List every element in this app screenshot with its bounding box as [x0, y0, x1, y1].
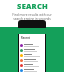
button[interactable]: [19, 58, 45, 63]
button[interactable]: [19, 53, 45, 58]
staticText: SEARCH: [17, 1, 48, 11]
button[interactable]: [19, 43, 45, 48]
staticText: Find more results with our search engine…: [12, 13, 52, 21]
button[interactable]: [19, 48, 45, 53]
button[interactable]: [19, 63, 45, 68]
button[interactable]: [19, 68, 45, 72]
staticText: Recent: [21, 36, 30, 40]
